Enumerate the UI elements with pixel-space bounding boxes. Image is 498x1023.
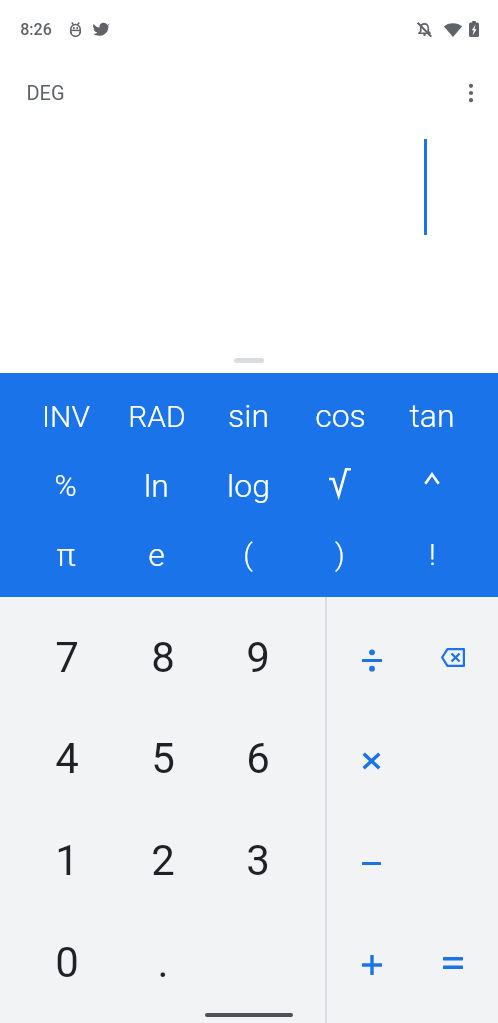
button[interactable]: %	[20, 451, 111, 520]
staticText: !	[429, 537, 436, 572]
staticText: 8:26	[20, 20, 52, 39]
button[interactable]: 5	[115, 708, 210, 809]
staticText: log	[227, 467, 270, 505]
staticText: (	[243, 537, 253, 572]
staticText: .	[157, 938, 169, 987]
button[interactable]: 0	[19, 911, 115, 1013]
button[interactable]: 9	[210, 607, 305, 708]
button[interactable]: sin	[202, 381, 294, 451]
button[interactable]: !	[386, 520, 478, 589]
button[interactable]: ln	[111, 451, 202, 520]
button[interactable]: 2	[115, 809, 210, 911]
button[interactable]: DEG	[18, 75, 73, 110]
button[interactable]: 8	[115, 607, 210, 708]
button[interactable]: RAD	[111, 381, 202, 451]
button[interactable]: log	[202, 451, 294, 520]
staticText: INV	[42, 399, 90, 434]
staticText: 7	[55, 633, 79, 682]
staticText: cos	[315, 397, 366, 435]
button[interactable]: tan	[386, 381, 478, 451]
staticText: 0	[55, 938, 79, 987]
staticText: e	[148, 536, 165, 574]
staticText: 9	[246, 633, 270, 682]
button[interactable]: Subtract	[331, 809, 412, 911]
button[interactable]: 3	[210, 809, 305, 911]
staticText: tan	[409, 397, 455, 435]
staticText: 4	[55, 734, 79, 783]
button[interactable]: Add	[331, 911, 412, 1013]
button[interactable]: 7	[19, 607, 115, 708]
button[interactable]: More options	[447, 69, 495, 117]
staticText: 2	[151, 836, 175, 885]
button[interactable]: 1	[19, 809, 115, 911]
staticText: RAD	[128, 399, 186, 434]
staticText: 8	[151, 633, 175, 682]
button[interactable]: Equals	[412, 911, 494, 1013]
staticText: 6	[246, 734, 270, 783]
staticText: sin	[228, 397, 269, 435]
staticText: π	[56, 536, 76, 574]
button[interactable]: π	[20, 520, 111, 589]
staticText: 3	[246, 836, 270, 885]
staticText: 5	[151, 734, 175, 783]
staticText: 1	[55, 836, 79, 885]
button[interactable]: 4	[19, 708, 115, 809]
staticText: )	[335, 537, 345, 572]
button[interactable]: Multiply	[331, 708, 412, 809]
button[interactable]: Divide	[331, 607, 412, 708]
button[interactable]: Backspace	[412, 607, 494, 708]
button[interactable]: .	[115, 911, 210, 1013]
staticText: %	[54, 468, 77, 503]
button[interactable]: e	[111, 520, 202, 589]
button[interactable]: )	[294, 520, 386, 589]
button[interactable]: 6	[210, 708, 305, 809]
button[interactable]: INV	[20, 381, 111, 451]
button[interactable]: cos	[294, 381, 386, 451]
button[interactable]	[294, 451, 386, 520]
staticText: ln	[144, 467, 169, 505]
button[interactable]: (	[202, 520, 294, 589]
button[interactable]	[386, 451, 478, 520]
staticText: DEG	[26, 81, 65, 104]
